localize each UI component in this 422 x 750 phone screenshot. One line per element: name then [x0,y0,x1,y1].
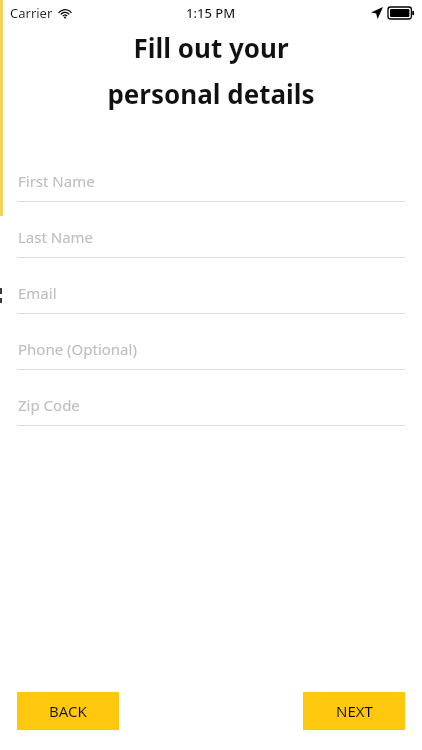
staticText: 1:15 PM [186,4,236,22]
staticText: Email [18,283,57,303]
button[interactable]: Zip Code [17,394,405,426]
button[interactable]: Phone (Optional) [17,338,405,370]
staticText: Carrier [10,4,53,22]
staticText: Phone (Optional) [18,339,137,359]
staticText: NEXT [336,701,373,721]
button[interactable]: NEXT [303,692,405,730]
button[interactable]: Email [17,282,405,314]
staticText: personal details [107,76,315,111]
button[interactable]: First Name [17,170,405,202]
staticText: Zip Code [18,395,80,415]
staticText: Fill out your [133,30,289,65]
staticText: First Name [18,171,95,191]
staticText: BACK [49,701,87,721]
button[interactable]: BACK [17,692,119,730]
button[interactable]: Last Name [17,226,405,258]
staticText: Last Name [18,227,94,247]
